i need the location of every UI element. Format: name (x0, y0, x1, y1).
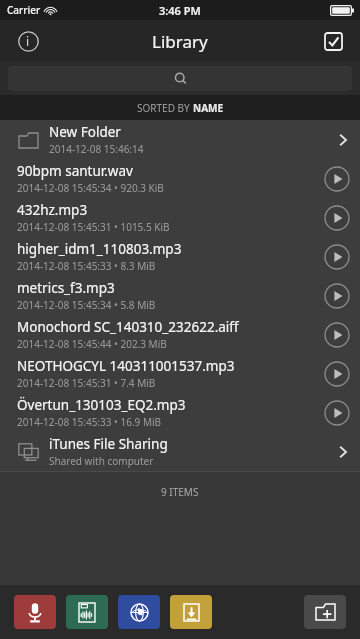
button[interactable]: Play NEOTHOGCYL 140311001537.mp3 (314, 354, 360, 393)
staticText: SORTED BY (137, 101, 193, 115)
staticText: 2014-12-08 15:45:34 • 5.8 MiB (17, 298, 156, 312)
button[interactable]: metrics_f3.mp3 (0, 276, 360, 315)
staticText: i (26, 33, 30, 49)
staticText: 2014-12-08 15:45:31 • 1015.5 KiB (17, 220, 170, 234)
button[interactable]: Play 432hz.mp3 (314, 198, 360, 237)
button[interactable] (8, 66, 352, 91)
button[interactable]: Play 90bpm santur.wav (314, 159, 360, 198)
button[interactable]: Select (316, 24, 350, 58)
staticText: 2014-12-08 15:45:44 • 202.3 MiB (17, 337, 167, 351)
button[interactable]: Waveform (66, 595, 108, 629)
staticText: iTunes File Sharing (49, 435, 168, 453)
staticText: 90bpm santur.wav (17, 162, 133, 180)
staticText: NAME (193, 101, 224, 115)
staticText: 3:46 PM (159, 3, 201, 18)
staticText: New Folder (49, 123, 121, 141)
button[interactable]: Info (10, 23, 46, 59)
staticText: higher_idm1_110803.mp3 (17, 240, 182, 258)
staticText: metrics_f3.mp3 (17, 279, 115, 297)
staticText: Carrier (7, 3, 41, 17)
staticText: 2014-12-08 15:45:31 • 7.4 MiB (17, 376, 156, 390)
staticText: 2014-12-08 15:45:33 • 16.9 MiB (17, 415, 162, 429)
button[interactable]: iTunes File Sharing (0, 432, 360, 471)
button[interactable]: 432hz.mp3 (0, 198, 360, 237)
button[interactable]: Import (170, 595, 212, 629)
button[interactable]: Web (118, 595, 160, 629)
staticText: 432hz.mp3 (17, 201, 88, 219)
staticText: Monochord SC_140310_232622.aiff (17, 318, 239, 336)
staticText: 9 ITEMS (161, 485, 199, 499)
staticText: Övertun_130103_EQ2.mp3 (17, 396, 186, 414)
button[interactable]: Play metrics_f3.mp3 (314, 276, 360, 315)
button[interactable]: Övertun_130103_EQ2.mp3 (0, 393, 360, 432)
staticText: Shared with computer (49, 454, 154, 468)
staticText: Library (152, 30, 208, 53)
staticText: NEOTHOGCYL 140311001537.mp3 (17, 357, 235, 375)
button[interactable]: Play higher_idm1_110803.mp3 (314, 237, 360, 276)
button[interactable]: Play Monochord SC_140310_232622.aiff (314, 315, 360, 354)
button[interactable]: Record (14, 595, 56, 629)
button[interactable]: Monochord SC_140310_232622.aiff (0, 315, 360, 354)
button[interactable]: Play Övertun_130103_EQ2.mp3 (314, 393, 360, 432)
button[interactable]: New Folder (304, 595, 346, 629)
staticText: 2014-12-08 15:46:14 (49, 142, 144, 156)
staticText: 2014-12-08 15:45:33 • 8.3 MiB (17, 259, 156, 273)
button[interactable]: NEOTHOGCYL 140311001537.mp3 (0, 354, 360, 393)
button[interactable]: 90bpm santur.wav (0, 159, 360, 198)
button[interactable]: higher_idm1_110803.mp3 (0, 237, 360, 276)
button[interactable]: New Folder (0, 120, 360, 159)
staticText: 2014-12-08 15:45:34 • 920.3 KiB (17, 181, 164, 195)
